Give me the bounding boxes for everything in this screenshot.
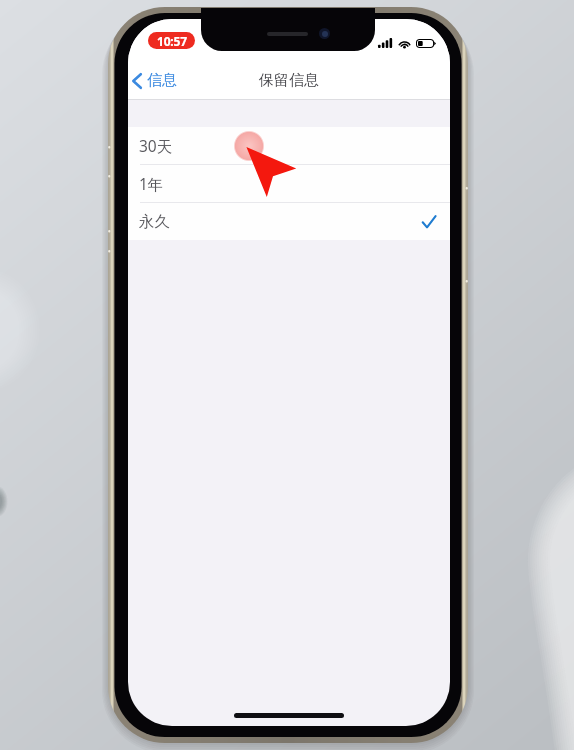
staticText: 10:57	[157, 33, 187, 49]
staticText: 30天	[139, 135, 173, 156]
staticText: 1年	[139, 173, 164, 194]
staticText: 保留信息	[259, 71, 319, 90]
button[interactable]: 永久	[128, 203, 450, 240]
button[interactable]: 30天	[128, 127, 450, 164]
button[interactable]: 1年	[128, 165, 450, 202]
staticText: 信息	[147, 71, 177, 90]
staticText: 永久	[139, 212, 170, 232]
button[interactable]: 信息	[128, 67, 187, 94]
